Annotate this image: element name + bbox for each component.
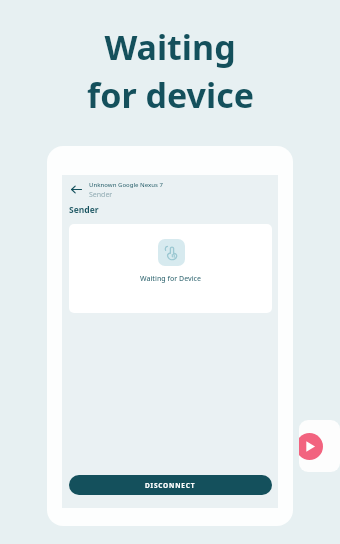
staticText: Sender [89,190,113,200]
button[interactable]: DISCONNECT [69,475,272,495]
staticText: Unknown Google Nexus 7 [89,181,163,189]
staticText: Sender [69,204,99,216]
staticText: for device [87,72,254,118]
button[interactable]: Waiting for Device [69,224,272,313]
button[interactable]: Play [299,420,340,472]
staticText: Waiting for Device [140,274,202,284]
button[interactable]: Back [68,181,84,197]
staticText: Waiting [104,24,236,70]
staticText: DISCONNECT [145,481,196,490]
